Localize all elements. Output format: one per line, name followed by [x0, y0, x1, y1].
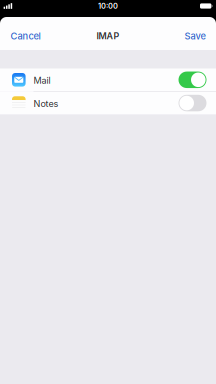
staticText: Mail — [34, 75, 51, 86]
button[interactable]: Cancel — [0, 19, 51, 48]
button[interactable]: Mail — [0, 68, 216, 91]
staticText: 10:00 — [98, 1, 118, 10]
button[interactable]: Save — [174, 19, 216, 48]
staticText: Save — [184, 30, 205, 42]
staticText: Cancel — [10, 30, 40, 42]
staticText: IMAP — [96, 31, 119, 41]
button[interactable]: Notes — [0, 92, 216, 114]
staticText: Notes — [34, 98, 59, 109]
